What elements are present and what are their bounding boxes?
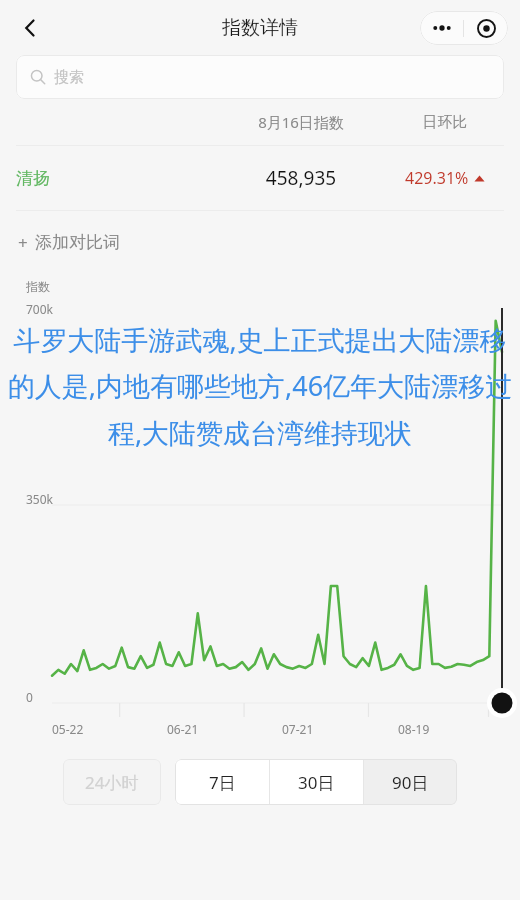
button[interactable]: 搜索 (16, 55, 504, 99)
staticText: 90日 (392, 771, 429, 794)
staticText: 06-21 (167, 721, 282, 737)
button[interactable]: Close (464, 11, 508, 45)
staticText: 350k (26, 491, 54, 507)
button[interactable]: 7日 (175, 759, 269, 805)
button[interactable]: 24小时 (63, 759, 161, 805)
staticText: 搜索 (54, 68, 84, 87)
button[interactable]: Back (8, 6, 52, 50)
staticText: 指数详情 (222, 16, 298, 40)
staticText: 清扬 (16, 168, 216, 189)
staticText: 08-19 (398, 721, 514, 737)
staticText: 日环比 (386, 113, 504, 132)
staticText: 429.31% (405, 167, 469, 189)
button[interactable]: 30日 (270, 759, 363, 805)
staticText: 指数 (26, 279, 50, 294)
staticText: 700k (26, 301, 54, 317)
button[interactable]: More (420, 11, 463, 45)
staticText: 458,935 (216, 165, 386, 191)
staticText: 8月16日指数 (216, 112, 386, 132)
staticText: 30日 (298, 771, 335, 794)
staticText: 24小时 (85, 771, 139, 794)
staticText: 添加对比词 (35, 232, 120, 253)
staticText: 0 (26, 689, 33, 705)
button[interactable]: + (0, 211, 520, 273)
staticText: 斗罗大陆手游武魂,史上正式提出大陆漂移的人是,内地有哪些地方,46亿年大陆漂移过… (4, 321, 516, 451)
button[interactable]: 清扬 (0, 146, 520, 210)
staticText: 7日 (209, 771, 236, 794)
button[interactable]: 90日 (364, 759, 457, 805)
staticText: 05-22 (52, 721, 167, 737)
staticText: 07-21 (282, 721, 398, 737)
staticText: + (18, 231, 28, 254)
